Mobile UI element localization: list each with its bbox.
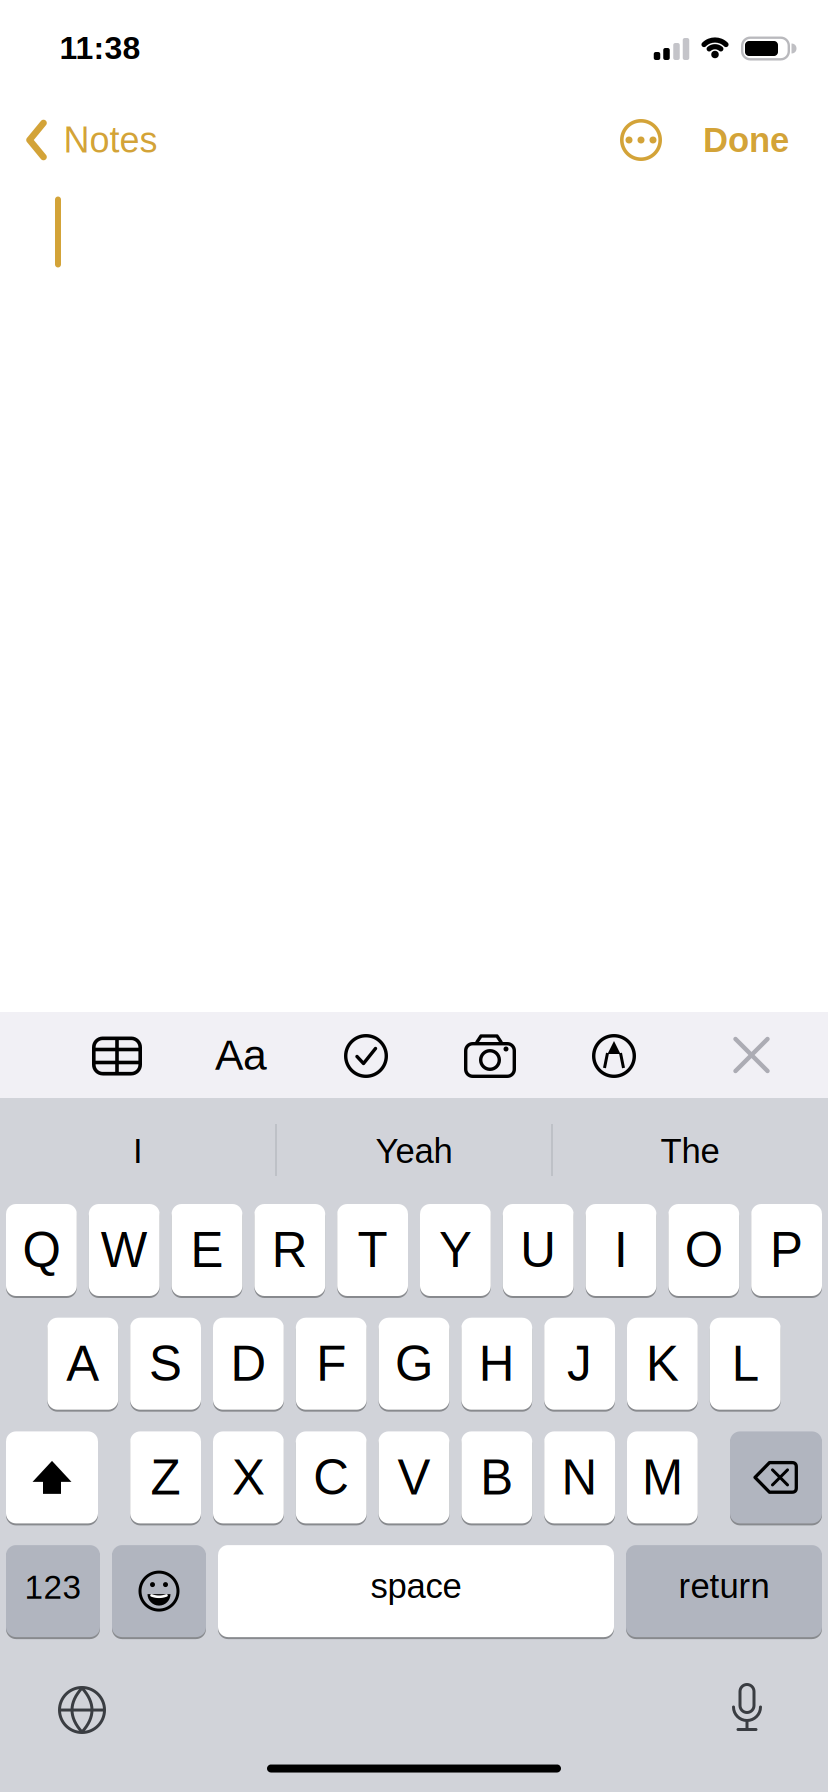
- staticText: P: [770, 1222, 803, 1277]
- button[interactable]: E: [172, 1204, 242, 1296]
- staticText: 11:38: [59, 30, 140, 66]
- button[interactable]: Z: [130, 1431, 201, 1523]
- staticText: U: [520, 1222, 556, 1277]
- staticText: W: [101, 1222, 148, 1277]
- button[interactable]: N: [544, 1431, 615, 1523]
- staticText: 123: [24, 1568, 81, 1606]
- button[interactable]: C: [296, 1431, 367, 1523]
- button[interactable]: Markup: [592, 1034, 636, 1078]
- button[interactable]: Shift: [6, 1431, 98, 1523]
- staticText: Y: [439, 1222, 472, 1277]
- button[interactable]: Next keyboard: [58, 1686, 106, 1734]
- button[interactable]: Yeah: [279, 1106, 549, 1196]
- button[interactable]: Numbers: [6, 1545, 100, 1637]
- button[interactable]: L: [710, 1318, 781, 1410]
- button[interactable]: I: [3, 1106, 273, 1196]
- button[interactable]: J: [544, 1318, 615, 1410]
- button[interactable]: T: [337, 1204, 408, 1296]
- staticText: Q: [22, 1222, 60, 1277]
- button[interactable]: Dictation: [732, 1685, 762, 1731]
- button[interactable]: space: [218, 1545, 614, 1637]
- staticText: B: [480, 1450, 513, 1505]
- button[interactable]: return: [626, 1545, 822, 1637]
- button[interactable]: Delete: [730, 1431, 822, 1523]
- staticText: Notes: [63, 120, 157, 160]
- button[interactable]: Dismiss keyboard: [734, 1038, 768, 1072]
- button[interactable]: Insert table: [92, 1036, 142, 1075]
- button[interactable]: G: [379, 1318, 449, 1410]
- staticText: The: [660, 1132, 719, 1170]
- staticText: G: [395, 1336, 433, 1391]
- button[interactable]: Q: [6, 1204, 77, 1296]
- button[interactable]: U: [503, 1204, 574, 1296]
- staticText: L: [732, 1336, 759, 1391]
- button[interactable]: M: [627, 1431, 698, 1523]
- staticText: E: [190, 1222, 223, 1277]
- staticText: R: [272, 1222, 308, 1277]
- staticText: space: [370, 1567, 461, 1605]
- button[interactable]: O: [668, 1204, 739, 1296]
- staticText: D: [230, 1336, 266, 1391]
- button[interactable]: K: [627, 1318, 698, 1410]
- button[interactable]: A: [47, 1318, 118, 1410]
- staticText: return: [678, 1567, 769, 1605]
- staticText: A: [66, 1336, 99, 1391]
- staticText: F: [316, 1336, 346, 1391]
- button[interactable]: The: [555, 1106, 825, 1196]
- staticText: I: [133, 1132, 143, 1170]
- button[interactable]: More: [620, 119, 662, 161]
- button[interactable]: S: [130, 1318, 201, 1410]
- button[interactable]: Done: [703, 121, 789, 159]
- staticText: Yeah: [375, 1132, 452, 1170]
- staticText: M: [642, 1450, 683, 1505]
- staticText: C: [313, 1450, 349, 1505]
- staticText: N: [562, 1450, 598, 1505]
- button[interactable]: W: [89, 1204, 160, 1296]
- staticText: I: [614, 1222, 628, 1277]
- button[interactable]: F: [296, 1318, 367, 1410]
- staticText: H: [479, 1336, 515, 1391]
- button[interactable]: Formatting: [215, 1031, 267, 1079]
- staticText: Done: [703, 121, 789, 159]
- button[interactable]: D: [213, 1318, 284, 1410]
- button[interactable]: Back: [26, 120, 157, 160]
- staticText: O: [685, 1222, 723, 1277]
- button[interactable]: Insert photo: [464, 1034, 516, 1078]
- button[interactable]: B: [461, 1431, 532, 1523]
- staticText: Z: [151, 1450, 181, 1505]
- staticText: X: [232, 1450, 265, 1505]
- button[interactable]: X: [213, 1431, 284, 1523]
- button[interactable]: H: [461, 1318, 532, 1410]
- button[interactable]: R: [254, 1204, 325, 1296]
- staticText: Aa: [215, 1031, 267, 1079]
- button[interactable]: Checklist: [344, 1034, 388, 1078]
- staticText: J: [567, 1336, 592, 1391]
- staticText: K: [646, 1336, 679, 1391]
- staticText: T: [358, 1222, 388, 1277]
- staticText: S: [149, 1336, 182, 1391]
- button[interactable]: Y: [420, 1204, 491, 1296]
- button[interactable]: V: [379, 1431, 449, 1523]
- button[interactable]: I: [586, 1204, 656, 1296]
- button[interactable]: P: [751, 1204, 822, 1296]
- button[interactable]: Emoji: [112, 1545, 206, 1637]
- staticText: V: [397, 1450, 430, 1505]
